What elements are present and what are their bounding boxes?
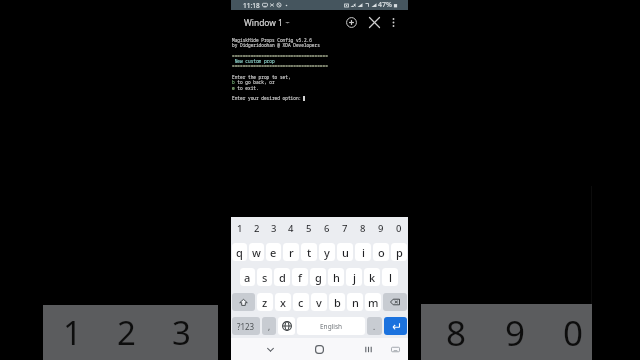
- staticText: to go back, or: [232, 79, 275, 85]
- button[interactable]: 8: [442, 304, 470, 360]
- staticText: r: [289, 245, 294, 260]
- staticText: n: [352, 295, 359, 310]
- button[interactable]: o: [373, 243, 389, 261]
- button[interactable]: 3: [265, 217, 282, 239]
- staticText: 6: [324, 222, 330, 235]
- staticText: b: [334, 295, 341, 310]
- button[interactable]: r: [283, 243, 299, 261]
- button[interactable]: u: [337, 243, 353, 261]
- button[interactable]: f: [292, 268, 308, 286]
- button[interactable]: 2: [248, 217, 265, 239]
- button[interactable]: n: [347, 293, 363, 311]
- button[interactable]: 0: [390, 217, 408, 239]
- button[interactable]: t: [301, 243, 317, 261]
- button[interactable]: Hide keyboard: [260, 339, 280, 359]
- button[interactable]: a: [240, 268, 255, 286]
- button[interactable]: v: [311, 293, 327, 311]
- staticText: d: [279, 270, 286, 285]
- staticText: o: [378, 245, 385, 260]
- staticText: ====================================: [232, 53, 328, 59]
- staticText: z: [262, 295, 268, 310]
- staticText: m: [368, 295, 379, 310]
- button[interactable]: 1: [231, 217, 248, 239]
- button[interactable]: Backspace: [383, 293, 407, 311]
- staticText: q: [236, 245, 243, 260]
- button[interactable]: 2: [112, 305, 140, 360]
- button[interactable]: h: [328, 268, 344, 286]
- staticText: v: [316, 295, 322, 310]
- button[interactable]: e: [266, 243, 281, 261]
- button[interactable]: More options: [384, 13, 403, 32]
- button[interactable]: d: [274, 268, 290, 286]
- button[interactable]: 1: [58, 305, 86, 360]
- button[interactable]: i: [355, 243, 371, 261]
- staticText: ?123: [237, 321, 255, 332]
- staticText: k: [369, 270, 376, 285]
- staticText: l: [389, 270, 392, 285]
- button[interactable]: 8: [354, 217, 372, 239]
- staticText: 4: [288, 222, 294, 235]
- staticText: New custom prop: [232, 58, 275, 64]
- button[interactable]: 5: [300, 217, 318, 239]
- staticText: 11:18: [243, 1, 260, 10]
- button[interactable]: New window: [342, 13, 361, 32]
- button[interactable]: 9: [372, 217, 390, 239]
- staticText: w: [252, 245, 261, 260]
- staticText: Enter your desired option:: [232, 95, 302, 101]
- button[interactable]: s: [257, 268, 272, 286]
- staticText: x: [280, 295, 286, 310]
- button[interactable]: 3: [167, 305, 195, 360]
- staticText: h: [333, 270, 340, 285]
- staticText: i: [362, 245, 365, 260]
- button[interactable]: x: [275, 293, 291, 311]
- button[interactable]: ?123: [232, 317, 260, 335]
- staticText: 47%: [378, 0, 392, 10]
- button[interactable]: g: [310, 268, 326, 286]
- button[interactable]: Recent apps: [358, 339, 378, 359]
- button[interactable]: b: [329, 293, 345, 311]
- button[interactable]: 0: [559, 304, 587, 360]
- button[interactable]: k: [364, 268, 380, 286]
- staticText: 2: [254, 222, 260, 235]
- button[interactable]: m: [365, 293, 381, 311]
- button[interactable]: Shift: [232, 293, 255, 311]
- button[interactable]: q: [232, 243, 247, 261]
- button[interactable]: Change language: [278, 317, 295, 335]
- button[interactable]: l: [382, 268, 398, 286]
- staticText: ,: [268, 321, 271, 332]
- staticText: MagiskHide Props Config v5.2.6: [232, 37, 312, 43]
- staticText: f: [298, 270, 302, 285]
- staticText: b: [232, 79, 235, 85]
- button[interactable]: z: [257, 293, 273, 311]
- staticText: a: [244, 270, 251, 285]
- button[interactable]: 4: [282, 217, 300, 239]
- button[interactable]: c: [293, 293, 309, 311]
- button[interactable]: 6: [318, 217, 336, 239]
- button[interactable]: 9: [501, 304, 529, 360]
- staticText: 8: [446, 309, 467, 357]
- button[interactable]: ,: [262, 317, 276, 335]
- staticText: s: [262, 270, 268, 285]
- button[interactable]: 7: [336, 217, 354, 239]
- button[interactable]: Enter: [384, 317, 407, 335]
- staticText: 8: [360, 222, 366, 235]
- button[interactable]: Home: [309, 339, 329, 359]
- button[interactable]: Switch keyboard: [385, 339, 405, 359]
- button[interactable]: Close: [365, 13, 384, 32]
- button[interactable]: Window 1: [242, 15, 292, 30]
- button[interactable]: p: [391, 243, 407, 261]
- staticText: 0: [563, 309, 584, 357]
- staticText: g: [315, 270, 322, 285]
- staticText: e: [232, 85, 235, 91]
- button[interactable]: w: [249, 243, 264, 261]
- staticText: j: [353, 270, 356, 285]
- button[interactable]: y: [319, 243, 335, 261]
- staticText: Window 1: [244, 17, 283, 28]
- staticText: c: [298, 295, 304, 310]
- staticText: 9: [378, 222, 384, 235]
- button[interactable]: j: [346, 268, 362, 286]
- staticText: 1: [237, 222, 243, 235]
- button[interactable]: .: [367, 317, 382, 335]
- button[interactable]: English: [297, 317, 365, 335]
- staticText: 3: [172, 310, 191, 355]
